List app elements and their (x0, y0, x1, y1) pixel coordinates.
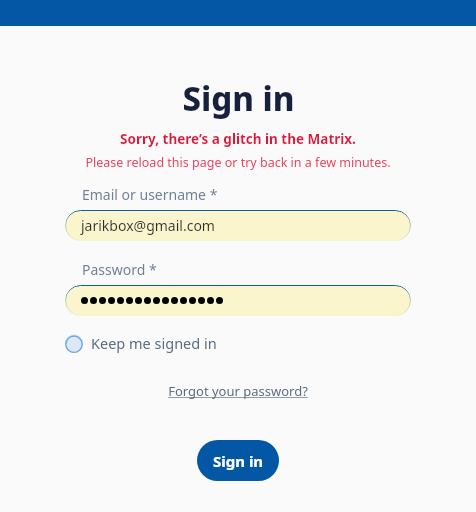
staticText: Password * (82, 260, 157, 279)
button[interactable]: Sign in (197, 440, 279, 481)
button[interactable]: jarikbox@gmail.com (65, 210, 411, 241)
button[interactable]: Keep me signed in (65, 333, 411, 353)
button[interactable] (65, 285, 411, 316)
staticText: Sign in (213, 451, 264, 471)
staticText: Sign in (182, 76, 295, 121)
staticText: Please reload this page or try back in a… (85, 154, 391, 171)
staticText: Sorry, there’s a glitch in the Matrix. (120, 130, 356, 148)
staticText: Forgot your password? (168, 382, 308, 400)
staticText: Email or username * (82, 185, 218, 204)
staticText: Keep me signed in (91, 333, 217, 353)
button[interactable]: Forgot your password? (168, 382, 308, 400)
staticText: jarikbox@gmail.com (81, 216, 215, 235)
